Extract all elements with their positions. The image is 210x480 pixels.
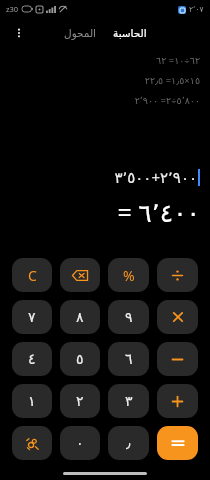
button[interactable]: Divide [157, 258, 198, 292]
staticText: ١٥×١٫٥= ٢٢٫٥ [144, 74, 200, 87]
staticText: ٩ [125, 309, 133, 325]
staticText: ١ [28, 393, 36, 409]
staticText: ٧ [28, 309, 36, 325]
button[interactable]: الحاسبة [108, 24, 152, 42]
staticText: ٣ [125, 393, 133, 409]
staticText: ٥ [76, 351, 84, 367]
staticText: ٢ [76, 393, 84, 409]
staticText: ٫ [126, 435, 131, 451]
button[interactable]: المحول [59, 24, 102, 42]
staticText: ٥٬٨٠٠÷٢= ٢٬٩٠٠ [134, 94, 200, 107]
button[interactable]: More options [6, 20, 32, 46]
button[interactable]: Minus [157, 342, 198, 376]
staticText: ٨ [76, 309, 84, 325]
button[interactable]: ٠ [60, 426, 100, 460]
staticText: ٢٬٠٧ [189, 5, 204, 14]
button[interactable]: ١ [12, 384, 52, 418]
staticText: ٠ [76, 435, 84, 451]
button[interactable]: ٣ [108, 384, 149, 418]
staticText: المحول [64, 27, 97, 39]
staticText: ٢٬٩٠٠+٣٬٥٠٠ [114, 167, 197, 187]
staticText: ٦٢÷١٠= ٦٢ [156, 54, 200, 67]
button[interactable]: ٫ [108, 426, 149, 460]
button[interactable]: Percent [108, 258, 149, 292]
staticText: ٦ [125, 351, 133, 367]
button[interactable]: ٦ [108, 342, 149, 376]
button[interactable]: ٤ [12, 342, 52, 376]
staticText: الحاسبة [113, 27, 147, 39]
staticText: % [123, 266, 135, 285]
button[interactable]: ٨ [60, 300, 100, 334]
staticText: ᴢ30 [6, 4, 19, 14]
button[interactable]: Clear [12, 258, 52, 292]
button[interactable]: Backspace [60, 258, 100, 292]
staticText: C [28, 266, 37, 285]
staticText: = ٦٬٤٠٠ [117, 195, 200, 229]
staticText: ٤ [28, 351, 36, 367]
button[interactable]: ٥ [60, 342, 100, 376]
button[interactable]: Plus [157, 384, 198, 418]
button[interactable]: Multiply [157, 300, 198, 334]
button[interactable]: ٩ [108, 300, 149, 334]
button[interactable]: Scientific mode [12, 426, 52, 460]
button[interactable]: Equals [157, 426, 198, 460]
button[interactable]: ٢ [60, 384, 100, 418]
button[interactable]: ٧ [12, 300, 52, 334]
